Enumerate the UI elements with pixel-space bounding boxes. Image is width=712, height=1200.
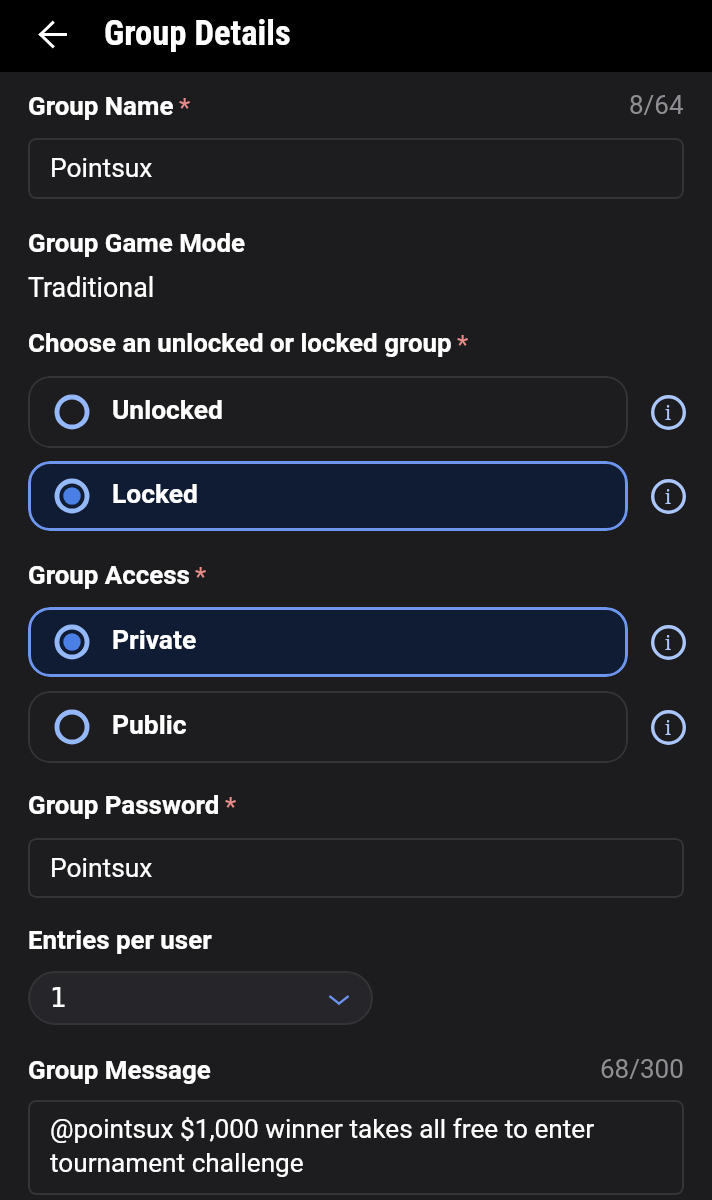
staticText: i <box>665 400 672 426</box>
staticText: @pointsux $1,000 winner takes all free t… <box>50 1114 664 1178</box>
staticText: Locked <box>112 479 198 510</box>
staticText: Group Access <box>28 560 190 590</box>
staticText: * <box>195 562 207 592</box>
button[interactable]: Info <box>641 691 696 763</box>
staticText: * <box>179 93 191 123</box>
staticText: i <box>665 630 672 656</box>
button[interactable]: Pointsux <box>28 838 684 898</box>
button[interactable]: Info <box>641 461 696 531</box>
staticText: Pointsux <box>50 853 153 884</box>
button[interactable]: Back <box>27 8 79 60</box>
staticText: * <box>225 792 237 822</box>
button[interactable]: @pointsux $1,000 winner takes all free t… <box>28 1100 684 1195</box>
staticText: Traditional <box>28 272 155 303</box>
staticText: Group Password <box>28 790 220 820</box>
staticText: 1 <box>50 982 67 1013</box>
staticText: Group Name <box>28 91 174 121</box>
staticText: Unlocked <box>112 395 223 426</box>
button[interactable]: Public <box>28 691 628 763</box>
button[interactable]: 1 <box>28 971 373 1025</box>
staticText: Group Message <box>28 1055 211 1085</box>
staticText: Private <box>112 625 197 656</box>
button[interactable]: Unlocked <box>28 376 628 448</box>
staticText: Pointsux <box>50 153 153 184</box>
staticText: Group Game Mode <box>28 228 246 258</box>
staticText: 8/64 <box>629 90 684 120</box>
button[interactable]: Private <box>28 607 628 677</box>
staticText: * <box>457 330 469 360</box>
button[interactable]: Info <box>641 607 696 677</box>
staticText: Choose an unlocked or locked group <box>28 328 452 358</box>
button[interactable]: Locked <box>28 461 628 531</box>
staticText: Entries per user <box>28 925 212 955</box>
staticText: 68/300 <box>600 1054 684 1084</box>
staticText: i <box>665 484 672 510</box>
staticText: Group Details <box>104 13 291 54</box>
button[interactable]: Pointsux <box>28 138 684 199</box>
button[interactable]: Info <box>641 376 696 448</box>
staticText: Public <box>112 710 187 741</box>
staticText: i <box>665 715 672 741</box>
